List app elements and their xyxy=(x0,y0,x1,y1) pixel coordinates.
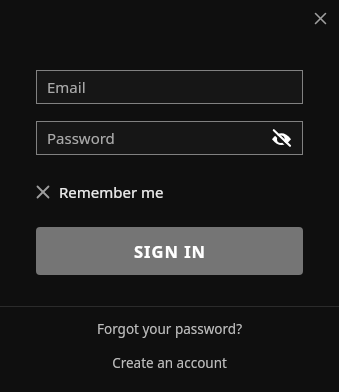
button[interactable]: Create an account xyxy=(0,354,339,372)
button[interactable]: SIGN IN xyxy=(36,227,303,275)
button[interactable]: Email xyxy=(36,70,303,104)
staticText: Email xyxy=(47,77,86,97)
button[interactable] xyxy=(309,7,331,29)
staticText: Remember me xyxy=(59,182,164,202)
button[interactable]: Forgot your password? xyxy=(0,320,339,338)
button[interactable]: Password xyxy=(36,121,303,155)
button[interactable]: Remember me xyxy=(37,182,164,202)
staticText: Password xyxy=(47,128,115,148)
staticText: SIGN IN xyxy=(134,240,206,262)
